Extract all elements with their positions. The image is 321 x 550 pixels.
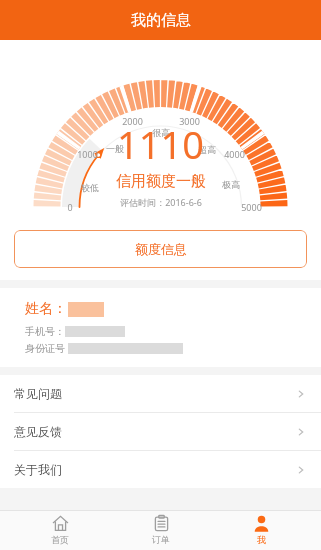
button[interactable]: 关于我们 bbox=[0, 451, 321, 488]
staticText: 身份证号 bbox=[25, 342, 65, 355]
staticText: 额度信息 bbox=[135, 241, 187, 257]
staticText: 超高 bbox=[198, 144, 216, 155]
staticText: 首页 bbox=[51, 534, 69, 545]
staticText: 评估时间：2016-6-6 bbox=[120, 196, 202, 208]
button[interactable]: 首页 bbox=[20, 510, 100, 550]
staticText: 一般 bbox=[106, 143, 124, 154]
other: 首页 bbox=[52, 515, 69, 532]
staticText: 常见问题 bbox=[14, 386, 62, 401]
staticText: 关于我们 bbox=[14, 462, 62, 477]
button[interactable]: 常见问题 bbox=[0, 375, 321, 412]
staticText: 2000 bbox=[122, 115, 143, 127]
other: 我 bbox=[253, 515, 270, 532]
staticText: 很高 bbox=[152, 127, 170, 138]
staticText: 极高 bbox=[222, 179, 240, 190]
button[interactable]: 我 bbox=[221, 510, 301, 550]
button[interactable]: 订单 bbox=[121, 510, 201, 550]
staticText: 姓名： bbox=[25, 300, 67, 318]
staticText: 意见反馈 bbox=[14, 424, 62, 439]
staticText: 0 bbox=[67, 201, 73, 213]
staticText: 手机号： bbox=[25, 325, 65, 338]
staticText: 信用额度一般 bbox=[116, 172, 206, 191]
other: 订单 bbox=[153, 515, 170, 532]
staticText: 1110 bbox=[117, 118, 204, 170]
button[interactable]: 额度信息 bbox=[14, 230, 307, 268]
button[interactable]: 意见反馈 bbox=[0, 413, 321, 450]
staticText: 1000 bbox=[77, 148, 98, 160]
staticText: 我的信息 bbox=[131, 11, 191, 30]
staticText: 较低 bbox=[81, 182, 99, 193]
staticText: 3000 bbox=[179, 115, 200, 127]
staticText: 我 bbox=[257, 534, 266, 545]
staticText: 订单 bbox=[152, 534, 170, 545]
staticText: 4000 bbox=[224, 148, 245, 160]
staticText: 5000 bbox=[241, 201, 262, 213]
